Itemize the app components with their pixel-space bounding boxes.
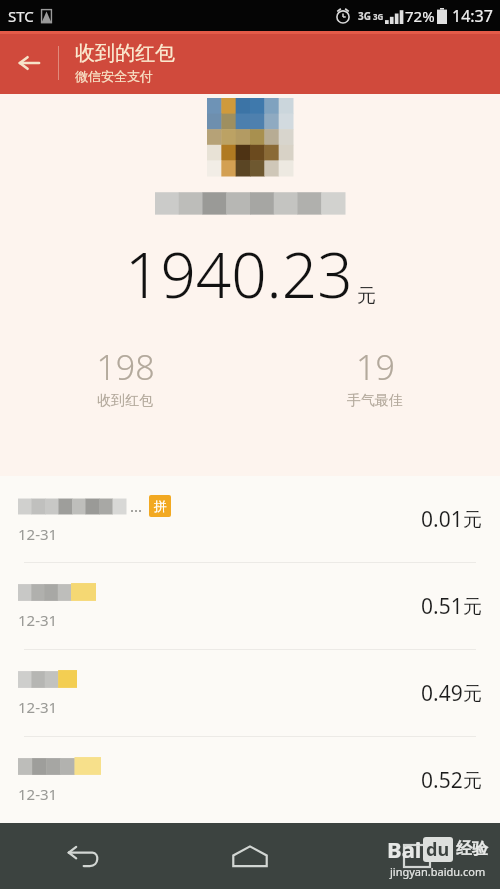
- staticText: 0.51: [421, 592, 463, 621]
- staticText: Bai: [387, 834, 422, 864]
- button[interactable]: 12-31: [0, 737, 500, 823]
- button[interactable]: Back: [0, 823, 166, 889]
- staticText: jingyan.baidu.com: [390, 864, 486, 879]
- staticText: 手气最佳: [347, 392, 403, 410]
- button[interactable]: Home: [166, 823, 333, 889]
- staticText: 0.49: [421, 679, 463, 708]
- staticText: 1940.23: [125, 232, 353, 316]
- staticText: 收到红包: [97, 392, 153, 410]
- staticText: 72%: [405, 6, 435, 26]
- button[interactable]: 198: [0, 344, 250, 410]
- staticText: 拼: [154, 498, 167, 514]
- staticText: 0.01: [421, 505, 463, 534]
- staticText: 12-31: [18, 610, 58, 630]
- staticText: STC: [8, 6, 34, 26]
- staticText: 微信安全支付: [75, 68, 153, 84]
- staticText: 198: [96, 344, 155, 390]
- staticText: 元: [463, 508, 482, 532]
- staticText: 3G: [358, 9, 371, 23]
- staticText: 经验: [456, 839, 488, 859]
- button[interactable]: Back: [0, 31, 58, 94]
- staticText: 收到的红包: [75, 41, 175, 66]
- staticText: 元: [463, 682, 482, 706]
- staticText: 3G: [373, 11, 384, 22]
- staticText: du: [426, 837, 450, 862]
- button[interactable]: Recents: [333, 823, 500, 889]
- button[interactable]: 12-31: [0, 650, 500, 736]
- staticText: 元: [463, 595, 482, 619]
- staticText: 12-31: [18, 697, 58, 717]
- staticText: 元: [463, 769, 482, 793]
- staticText: 19: [356, 344, 395, 390]
- staticText: 0.52: [421, 766, 463, 795]
- staticText: 元: [357, 284, 376, 308]
- button[interactable]: ...: [0, 476, 500, 562]
- button[interactable]: 12-31: [0, 563, 500, 649]
- staticText: 12-31: [18, 784, 58, 804]
- staticText: ...: [130, 496, 143, 516]
- button[interactable]: 19: [250, 344, 500, 410]
- staticText: 12-31: [18, 524, 58, 544]
- staticText: 14:37: [452, 5, 493, 27]
